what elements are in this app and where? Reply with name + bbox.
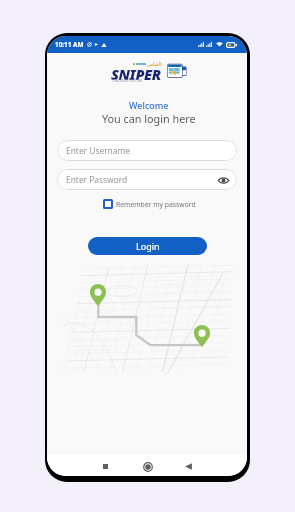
button[interactable]: Recent apps [95,456,116,476]
button[interactable]: Login [88,237,207,255]
button[interactable]: Home [137,456,158,476]
staticText: Enter Password [66,174,128,185]
staticText: Login [136,240,160,252]
staticText: Welcome [129,99,169,111]
staticText: You can login here [102,111,196,126]
staticText: 10:11 AM [55,40,84,49]
staticText: Enter Username [66,145,131,156]
button[interactable]: Back [178,456,199,476]
button[interactable]: Show password [217,174,229,186]
button[interactable]: Enter Password [57,169,237,190]
staticText: القناص [147,61,162,67]
staticText: TRACKING SYSTEM [112,78,142,82]
staticText: Remember my password [116,200,196,209]
button[interactable]: Enter Username [57,140,237,161]
staticText: SNIPER [111,64,161,84]
button[interactable]: Remember my password [101,198,198,210]
